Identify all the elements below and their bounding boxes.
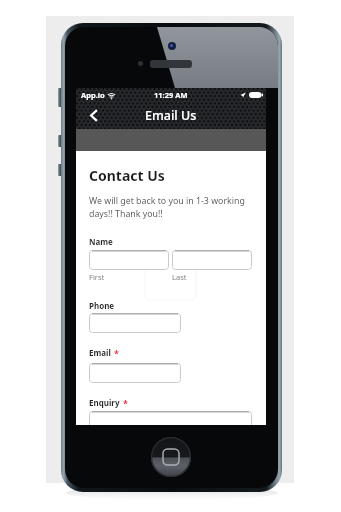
- staticText: 11:29 AM: [154, 90, 188, 100]
- staticText: Email: [89, 347, 111, 358]
- button[interactable]: [89, 363, 181, 383]
- button[interactable]: Back: [76, 101, 108, 129]
- button[interactable]: [89, 411, 252, 425]
- staticText: We will get back to you in 1-3 working d…: [89, 195, 255, 219]
- staticText: Name: [89, 236, 113, 247]
- staticText: *: [123, 397, 128, 409]
- staticText: Phone: [89, 300, 115, 311]
- staticText: *: [114, 347, 119, 359]
- button[interactable]: [89, 313, 181, 333]
- staticText: Contact Us: [89, 166, 165, 185]
- button[interactable]: [172, 250, 252, 270]
- staticText: First: [89, 272, 105, 282]
- staticText: Enquiry: [89, 397, 120, 408]
- staticText: Last: [172, 272, 187, 282]
- button[interactable]: [89, 250, 169, 270]
- staticText: App.io: [81, 90, 105, 100]
- button[interactable]: Home: [151, 437, 191, 477]
- staticText: Email Us: [145, 107, 197, 124]
